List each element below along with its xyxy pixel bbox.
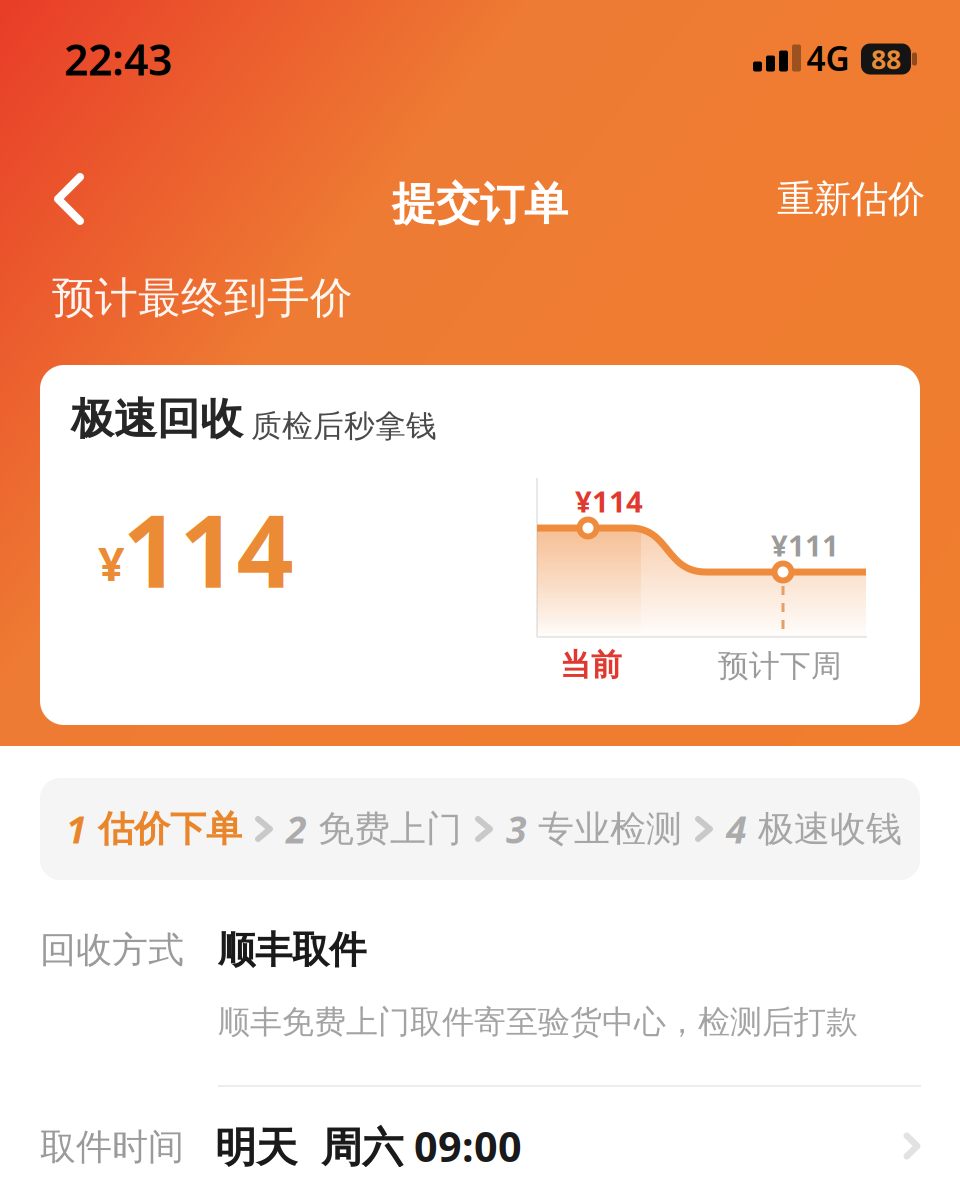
staticText: 明天 周六 09:00 (215, 1119, 522, 1173)
staticText: 22:43 (64, 31, 172, 87)
button[interactable] (40, 365, 920, 725)
staticText: 质检后秒拿钱 (251, 407, 437, 445)
staticText: ¥114 (575, 481, 643, 520)
staticText: 极速回收 (71, 393, 243, 445)
staticText: 专业检测 (538, 807, 682, 851)
staticText: 极速收钱 (758, 807, 902, 851)
button[interactable]: 回收方式 (0, 905, 960, 1095)
staticText: 免费上门 (318, 807, 462, 851)
staticText: 重新估价 (777, 176, 925, 222)
staticText: 预计下周 (718, 647, 842, 685)
staticText: 回收方式 (40, 928, 184, 972)
button[interactable]: 重新估价 (705, 169, 925, 229)
staticText: 取件时间 (40, 1125, 184, 1169)
staticText: 3 (506, 804, 527, 854)
button[interactable]: 取件时间 (0, 1105, 960, 1203)
button[interactable] (54, 173, 84, 225)
staticText: 88 (871, 41, 901, 77)
staticText: 4G (806, 36, 849, 80)
staticText: ¥111 (771, 525, 839, 564)
staticText: 2 (286, 804, 307, 854)
staticText: 估价下单 (98, 807, 242, 851)
staticText: 1 (66, 804, 87, 854)
staticText: 114 (122, 483, 293, 615)
staticText: ¥ (98, 532, 125, 594)
staticText: 当前 (560, 646, 622, 684)
staticText: 顺丰免费上门取件寄至验货中心，检测后打款 (218, 1002, 858, 1042)
staticText: 顺丰取件 (218, 927, 366, 973)
staticText: 提交订单 (392, 177, 568, 231)
staticText: 4 (726, 804, 747, 854)
staticText: 预计最终到手价 (52, 272, 353, 324)
